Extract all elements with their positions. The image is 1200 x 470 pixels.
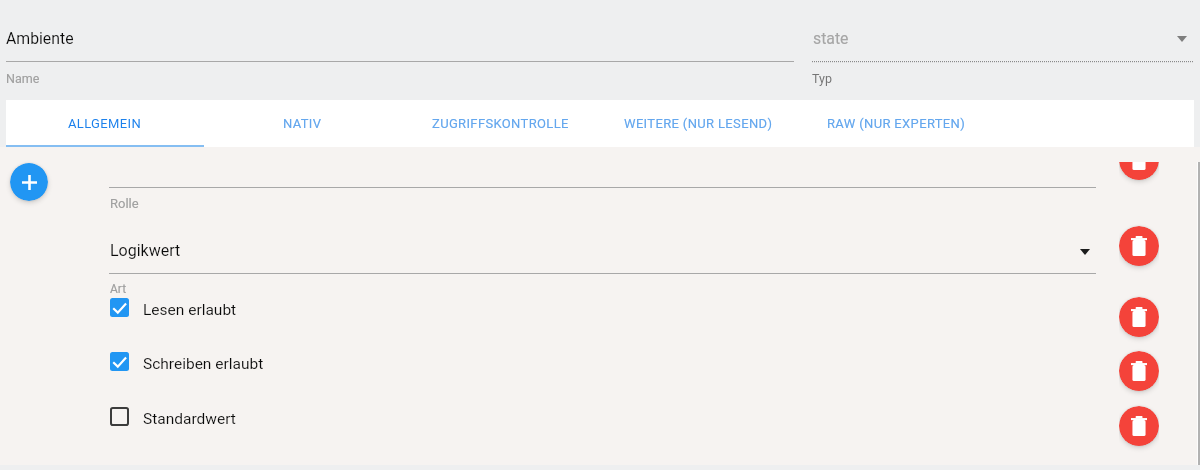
button[interactable]: Lesen erlaubt <box>110 297 237 317</box>
button[interactable]: Delete <box>1119 226 1159 266</box>
button[interactable]: Delete <box>1119 297 1159 337</box>
button[interactable]: Delete <box>1119 351 1159 391</box>
staticText: NATIV <box>283 116 322 131</box>
staticText: Art <box>110 282 127 296</box>
staticText: Rolle <box>110 196 139 211</box>
staticText: Logikwert <box>110 241 181 260</box>
button[interactable]: state <box>812 22 1193 88</box>
staticText: state <box>813 29 849 48</box>
button[interactable]: Standardwert <box>110 406 236 426</box>
button[interactable]: Delete <box>1119 406 1159 446</box>
staticText: Schreiben erlaubt <box>143 355 264 373</box>
button[interactable]: Ambiente <box>6 22 794 88</box>
button[interactable]: Schreiben erlaubt <box>110 351 264 371</box>
button[interactable]: NATIV <box>205 100 400 147</box>
button[interactable]: RAW (NUR EXPERTEN) <box>797 100 995 147</box>
staticText: Standardwert <box>143 410 236 428</box>
staticText: ZUGRIFFSKONTROLLE <box>432 116 569 131</box>
button[interactable]: Add <box>10 163 48 201</box>
staticText: Ambiente <box>6 29 74 48</box>
staticText: RAW (NUR EXPERTEN) <box>827 116 966 131</box>
staticText: WEITERE (NUR LESEND) <box>624 116 773 131</box>
button[interactable]: Delete <box>1119 162 1159 180</box>
button[interactable]: ALLGEMEIN <box>5 100 205 147</box>
staticText: Lesen erlaubt <box>143 301 237 319</box>
button[interactable]: ZUGRIFFSKONTROLLE <box>401 100 599 147</box>
staticText: Name <box>6 71 40 86</box>
staticText: ALLGEMEIN <box>68 116 142 131</box>
staticText: Typ <box>812 71 832 86</box>
button[interactable]: WEITERE (NUR LESEND) <box>599 100 797 147</box>
